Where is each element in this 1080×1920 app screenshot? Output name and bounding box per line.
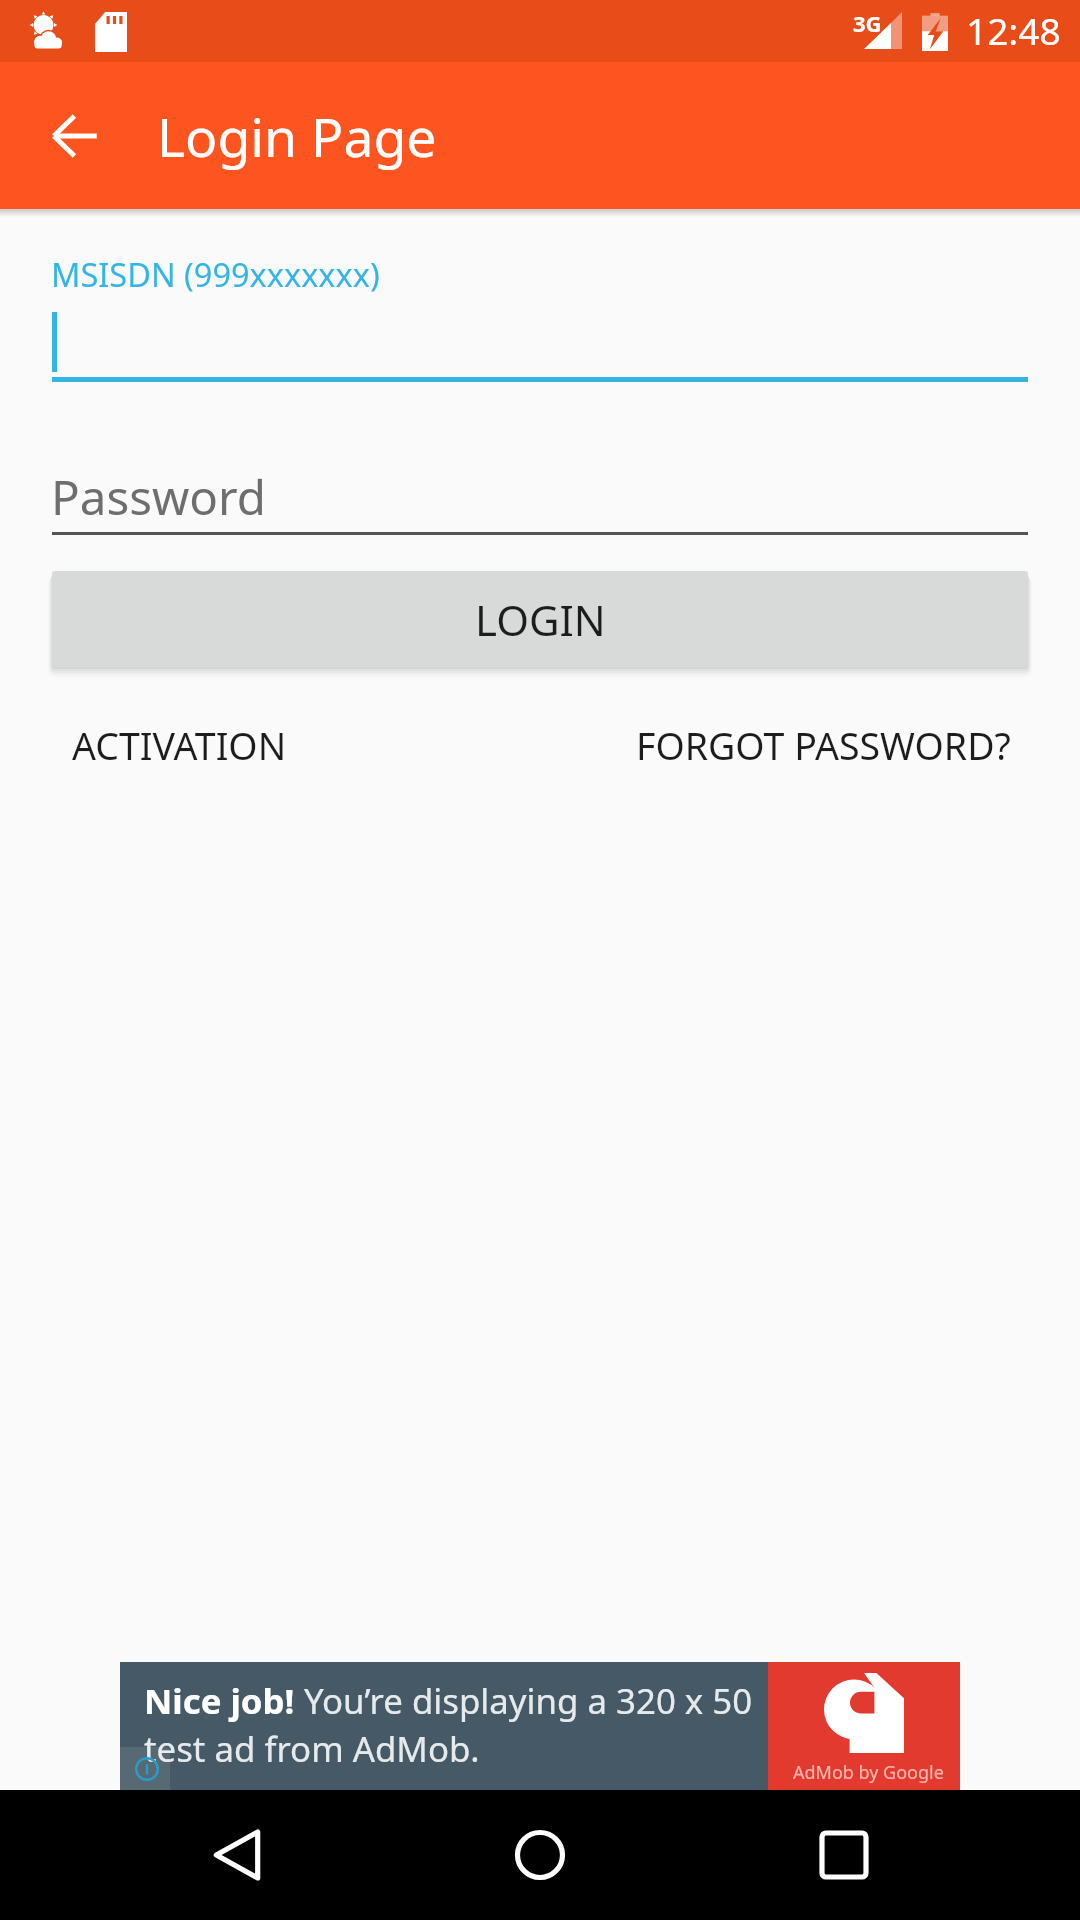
staticText: ACTIVATION <box>72 720 287 771</box>
staticText: Nice job! <box>144 1677 304 1724</box>
staticText: You’re displaying a 320 x 50 <box>304 1677 753 1724</box>
staticText: LOGIN <box>475 591 606 648</box>
staticText: 12:48 <box>966 5 1061 55</box>
button[interactable]: Recent apps <box>784 1790 904 1920</box>
button[interactable]: Back <box>177 1790 297 1920</box>
button[interactable]: Home <box>480 1790 600 1920</box>
staticText: 3G <box>853 8 882 38</box>
button[interactable]: MSISDN (999xxxxxxx) <box>52 240 1028 382</box>
staticText: FORGOT PASSWORD? <box>636 720 1011 771</box>
staticText: test ad from AdMob. <box>144 1725 480 1772</box>
button[interactable]: Back <box>41 100 113 172</box>
staticText: Login Page <box>157 100 437 173</box>
button[interactable]: Nice job! <box>120 1662 960 1790</box>
staticText: Password <box>51 464 266 529</box>
button[interactable]: FORGOT PASSWORD? <box>618 707 1028 783</box>
staticText: AdMob by Google <box>793 1760 944 1785</box>
staticText: MSISDN (999xxxxxxx) <box>51 252 380 296</box>
button[interactable]: ACTIVATION <box>52 707 307 783</box>
button[interactable]: Password <box>52 460 1028 535</box>
button[interactable]: LOGIN <box>52 571 1028 667</box>
